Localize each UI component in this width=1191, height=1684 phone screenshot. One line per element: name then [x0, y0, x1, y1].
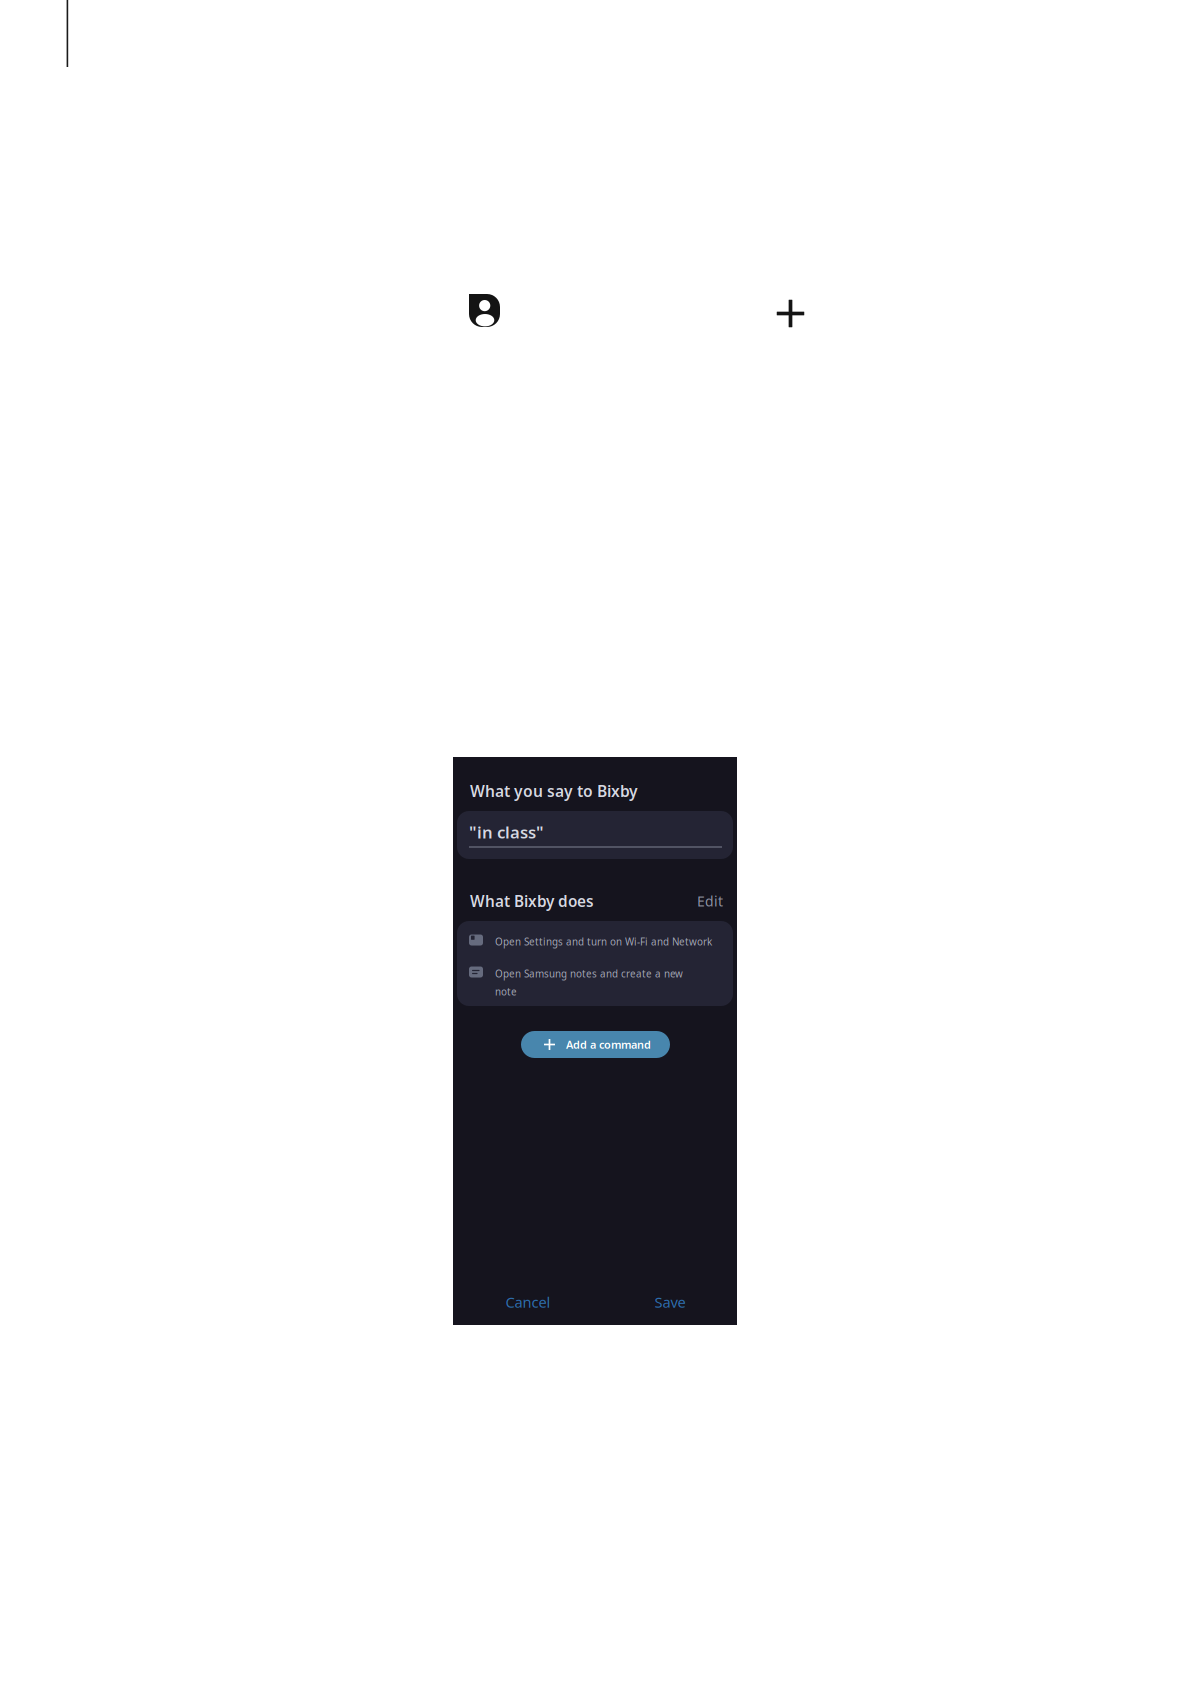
- button[interactable]: Profile: [469, 294, 500, 327]
- staticText: Add a command: [566, 1037, 651, 1052]
- button[interactable]: Cancel: [493, 1292, 563, 1312]
- staticText: What you say to Bixby: [470, 780, 638, 802]
- staticText: Open Settings and turn on Wi-Fi and Netw…: [495, 935, 712, 948]
- staticText: Cancel: [505, 1292, 550, 1312]
- staticText: What Bixby does: [470, 891, 594, 911]
- staticText: Edit: [697, 891, 723, 911]
- button[interactable]: Add: [777, 300, 804, 327]
- button[interactable]: Add a command: [521, 1031, 670, 1058]
- staticText: Open Samsung notes and create a new note: [495, 967, 683, 998]
- button[interactable]: Save: [635, 1292, 705, 1312]
- staticText: "in class": [469, 821, 544, 843]
- staticText: Save: [654, 1292, 685, 1312]
- button[interactable]: Edit: [679, 891, 723, 911]
